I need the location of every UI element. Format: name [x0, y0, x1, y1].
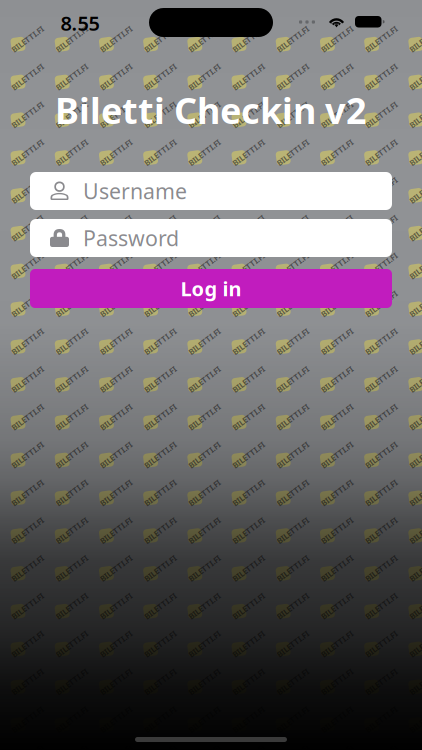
staticText: BILETTI.FI [278, 612, 316, 623]
staticText: BILETTI.FI [145, 612, 183, 623]
staticText: BILETTI.FI [145, 499, 183, 509]
staticText: BILETTI.FI [12, 310, 50, 320]
staticText: BILETTI.FI [278, 121, 316, 131]
staticText: BILETTI.FI [322, 499, 360, 509]
staticText: BILETTI.FI [322, 83, 360, 94]
staticText: BILETTI.FI [57, 121, 95, 131]
staticText: BILETTI.FI [189, 121, 227, 131]
staticText: BILETTI.FI [189, 83, 227, 94]
staticText: BILETTI.FI [366, 461, 404, 472]
staticText: BILETTI.FI [410, 121, 422, 131]
staticText: Biletti Checkin v2 [55, 86, 367, 134]
staticText: BILETTI.FI [145, 650, 183, 661]
staticText: BILETTI.FI [145, 234, 183, 245]
staticText: BILETTI.FI [410, 461, 422, 472]
staticText: BILETTI.FI [233, 499, 271, 509]
staticText: BILETTI.FI [145, 196, 183, 207]
staticText: BILETTI.FI [145, 461, 183, 472]
staticText: BILETTI.FI [12, 385, 50, 396]
staticText: BILETTI.FI [278, 348, 316, 358]
staticText: BILETTI.FI [366, 537, 404, 547]
staticText: BILETTI.FI [366, 423, 404, 434]
staticText: BILETTI.FI [57, 461, 95, 472]
staticText: 8.55 [60, 10, 99, 36]
staticText: BILETTI.FI [101, 499, 139, 509]
staticText: BILETTI.FI [278, 45, 316, 56]
staticText: BILETTI.FI [12, 159, 50, 169]
staticText: BILETTI.FI [12, 234, 50, 245]
staticText: BILETTI.FI [189, 612, 227, 623]
staticText: BILETTI.FI [101, 310, 139, 320]
staticText: BILETTI.FI [410, 612, 422, 623]
staticText: BILETTI.FI [189, 499, 227, 509]
staticText: BILETTI.FI [12, 423, 50, 434]
staticText: BILETTI.FI [278, 650, 316, 661]
staticText: BILETTI.FI [278, 385, 316, 396]
staticText: BILETTI.FI [145, 423, 183, 434]
staticText: BILETTI.FI [57, 537, 95, 547]
button[interactable]: Username [30, 172, 392, 210]
staticText: BILETTI.FI [366, 574, 404, 585]
staticText: BILETTI.FI [366, 272, 404, 283]
staticText: BILETTI.FI [366, 499, 404, 509]
staticText: BILETTI.FI [366, 159, 404, 169]
staticText: BILETTI.FI [410, 650, 422, 661]
staticText: BILETTI.FI [12, 121, 50, 131]
staticText: BILETTI.FI [233, 159, 271, 169]
staticText: BILETTI.FI [145, 121, 183, 131]
button[interactable]: Password [30, 219, 392, 257]
staticText: BILETTI.FI [233, 45, 271, 56]
staticText: BILETTI.FI [410, 83, 422, 94]
staticText: BILETTI.FI [101, 461, 139, 472]
staticText: BILETTI.FI [410, 537, 422, 547]
staticText: BILETTI.FI [278, 83, 316, 94]
staticText: BILETTI.FI [189, 310, 227, 320]
staticText: BILETTI.FI [101, 83, 139, 94]
staticText: BILETTI.FI [12, 612, 50, 623]
staticText: BILETTI.FI [57, 612, 95, 623]
staticText: BILETTI.FI [278, 310, 316, 320]
staticText: BILETTI.FI [410, 385, 422, 396]
staticText: BILETTI.FI [57, 348, 95, 358]
staticText: BILETTI.FI [366, 121, 404, 131]
staticText: BILETTI.FI [101, 159, 139, 169]
staticText: BILETTI.FI [101, 423, 139, 434]
staticText: BILETTI.FI [145, 159, 183, 169]
staticText: BILETTI.FI [57, 650, 95, 661]
staticText: Log in [180, 275, 241, 302]
staticText: BILETTI.FI [233, 83, 271, 94]
staticText: BILETTI.FI [145, 537, 183, 547]
staticText: BILETTI.FI [278, 159, 316, 169]
staticText: BILETTI.FI [322, 121, 360, 131]
staticText: BILETTI.FI [233, 423, 271, 434]
staticText: BILETTI.FI [366, 385, 404, 396]
button[interactable]: Log in [30, 269, 392, 308]
staticText: BILETTI.FI [145, 385, 183, 396]
staticText: BILETTI.FI [101, 196, 139, 207]
staticText: BILETTI.FI [145, 574, 183, 585]
staticText: BILETTI.FI [57, 310, 95, 320]
staticText: BILETTI.FI [366, 83, 404, 94]
